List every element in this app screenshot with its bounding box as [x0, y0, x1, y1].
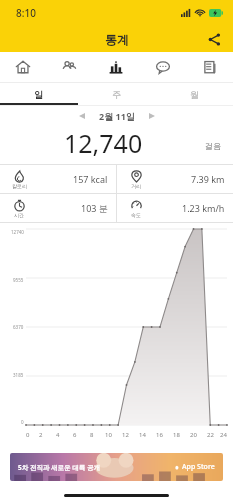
button[interactable]: Friends	[46, 52, 92, 82]
button[interactable]: 칼로리	[0, 165, 116, 193]
staticText: 7.39 km	[191, 173, 225, 185]
button[interactable]: Chat	[139, 52, 186, 82]
staticText: 16	[156, 431, 163, 439]
staticText: 칼로리	[12, 183, 27, 189]
staticText: 일	[34, 89, 43, 100]
staticText: 8	[90, 431, 94, 439]
staticText: 1.23 km/h	[182, 202, 225, 214]
button[interactable]: 월	[155, 83, 233, 105]
staticText: 14	[139, 431, 146, 439]
staticText: 12740	[11, 229, 24, 235]
staticText: 거리	[131, 183, 141, 189]
staticText: 4	[56, 431, 60, 439]
button[interactable]: 속도	[117, 194, 233, 222]
staticText: 103 분	[81, 202, 108, 214]
button[interactable]: 5차 전직과 새로운 대륙 공개	[10, 453, 223, 481]
staticText: 5차 전직과 새로운 대륙 공개	[18, 463, 100, 472]
staticText: 6	[73, 431, 77, 439]
staticText: 9555	[13, 277, 24, 283]
staticText: 주	[112, 89, 121, 100]
staticText: 0	[21, 419, 24, 425]
button[interactable]: Share	[203, 28, 225, 50]
staticText: 22	[207, 431, 214, 439]
staticText: 10	[105, 431, 112, 439]
button[interactable]: 거리	[117, 165, 233, 193]
staticText: 18	[173, 431, 180, 439]
staticText: 3185	[13, 372, 24, 378]
staticText: 12,740	[64, 126, 143, 158]
staticText: 157 kcal	[73, 173, 108, 185]
button[interactable]: News	[186, 52, 233, 82]
staticText: 6370	[13, 324, 24, 330]
button[interactable]: Previous day	[73, 107, 91, 125]
button[interactable]: Home	[0, 52, 46, 82]
staticText: 2월 11일	[99, 110, 135, 122]
staticText: 월	[190, 89, 199, 100]
staticText: 2	[39, 431, 43, 439]
staticText: 12	[122, 431, 129, 439]
button[interactable]: Next day	[143, 107, 161, 125]
staticText: 24	[220, 431, 227, 439]
staticText: 통계	[105, 32, 129, 47]
button[interactable]: 일	[0, 83, 77, 105]
staticText: 8:10	[16, 6, 36, 20]
button[interactable]: 시간	[0, 194, 116, 222]
staticText: App Store	[182, 462, 215, 472]
staticText: 속도	[131, 212, 141, 218]
staticText: 20	[190, 431, 197, 439]
staticText: 걸음	[205, 141, 221, 151]
button[interactable]: Statistics	[92, 52, 139, 82]
staticText: 0	[26, 431, 30, 439]
staticText: 시간	[14, 212, 24, 218]
button[interactable]: 주	[77, 83, 155, 105]
